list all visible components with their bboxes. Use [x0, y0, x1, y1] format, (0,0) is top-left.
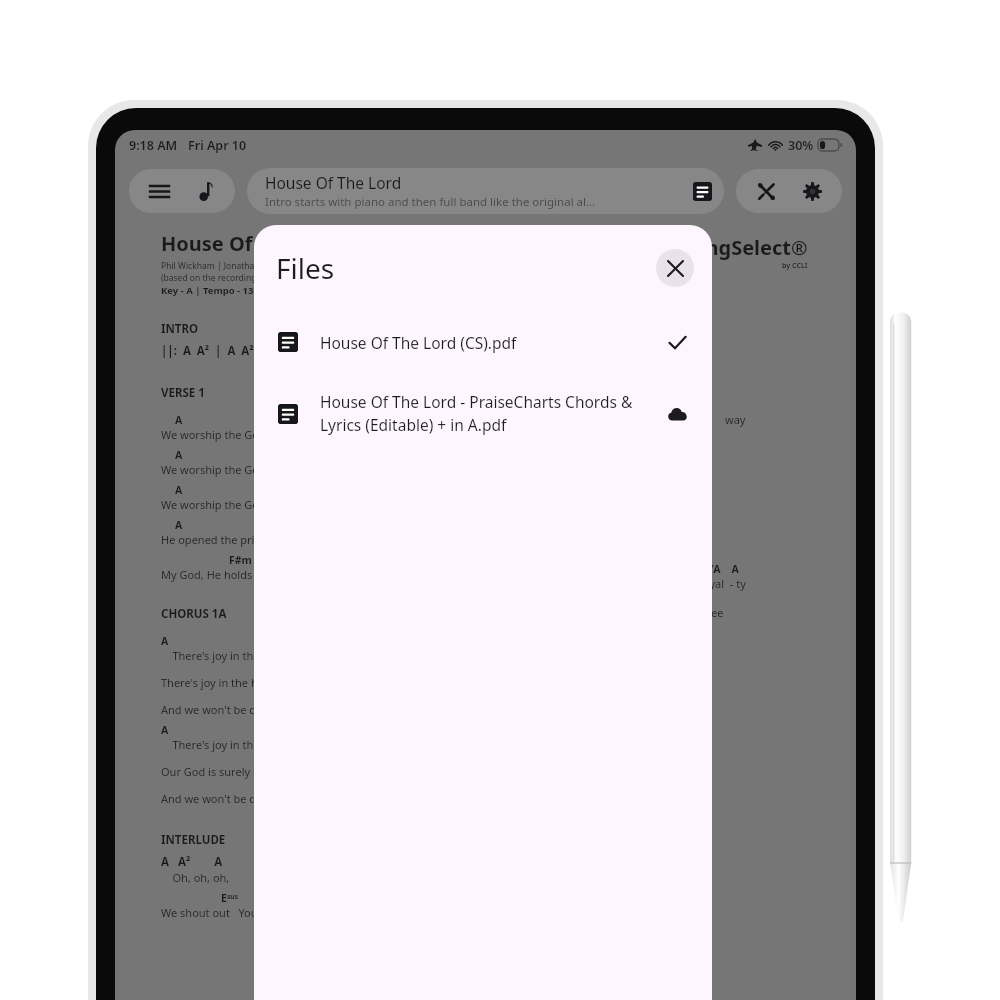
staticText: House Of The Lord (CS).pdf: [320, 332, 517, 353]
button[interactable]: House Of The Lord (CS).pdf: [254, 317, 712, 367]
staticText: VERSE 1: [161, 385, 205, 401]
staticText: A A² A: [161, 854, 223, 870]
staticText: way: [725, 412, 746, 427]
staticText: A: [175, 518, 183, 532]
staticText: oyal - ty: [703, 576, 746, 591]
staticText: My God, He holds the victory: [161, 567, 310, 582]
staticText: INTRO: [161, 321, 199, 337]
staticText: free: [703, 605, 724, 620]
button[interactable]: Tools: [750, 175, 782, 207]
button[interactable]: House Of The Lord - PraiseCharts Chords …: [254, 383, 712, 444]
staticText: ||: A A² | A A² :||: [161, 343, 276, 359]
staticText: We worship the God who was: [161, 427, 314, 442]
staticText: We worship the God who is: [161, 462, 302, 477]
staticText: A: [161, 634, 169, 648]
staticText: There's joy in the house today: [161, 675, 315, 690]
staticText: E/A A: [703, 562, 739, 576]
staticText: Oh, oh, oh,: [161, 870, 230, 885]
staticText: Fri Apr 10: [188, 137, 247, 154]
staticText: There's joy in the house of the Lord: [161, 737, 354, 752]
button[interactable]: Settings: [796, 175, 828, 207]
staticText: CHORUS 1A: [161, 606, 227, 622]
staticText: 9:18 AM: [129, 137, 178, 154]
staticText: He opened the prison doors: [161, 532, 306, 547]
staticText: We worship the God who evermore will be: [161, 497, 380, 512]
staticText: House Of The Lord - PraiseCharts Chords …: [320, 391, 648, 436]
staticText: SongSelect®: [682, 234, 808, 261]
staticText: A: [175, 413, 183, 427]
staticText: Our God is surely in this place: [161, 764, 315, 779]
staticText: A: [161, 723, 169, 737]
staticText: by CCLI: [782, 261, 808, 271]
staticText: There's joy in the house of the Lord: [161, 648, 354, 663]
button[interactable]: Download: [660, 397, 694, 431]
staticText: House Of The Lord: [265, 172, 402, 193]
button[interactable]: Selected: [660, 325, 694, 359]
button[interactable]: Music: [189, 175, 221, 207]
staticText: INTERLUDE: [161, 832, 226, 848]
staticText: Intro starts with piano and then full ba…: [265, 194, 596, 210]
staticText: Files: [276, 249, 335, 287]
staticText: Phil Wickham | Jonathan Smith: [161, 260, 285, 272]
staticText: A: [175, 448, 183, 462]
button[interactable]: Close: [656, 249, 694, 287]
staticText: And we won't be quiet: [161, 791, 276, 806]
staticText: 30%: [788, 137, 814, 154]
staticText: House Of The Lord: [161, 230, 345, 257]
button[interactable]: Menu: [143, 175, 175, 207]
staticText: A: [175, 483, 183, 497]
staticText: F#m: [229, 553, 252, 567]
staticText: And we won't be quiet: [161, 702, 276, 717]
button[interactable]: House Of The Lord: [247, 168, 724, 214]
staticText: (based on the recording from House Of Th…: [161, 272, 358, 284]
staticText: We shout out Your praise: [161, 905, 297, 920]
staticText: Key - A | Tempo - 130 | Time - 4/4: [161, 284, 316, 297]
staticText: Eˢᵘˢ: [221, 891, 239, 905]
